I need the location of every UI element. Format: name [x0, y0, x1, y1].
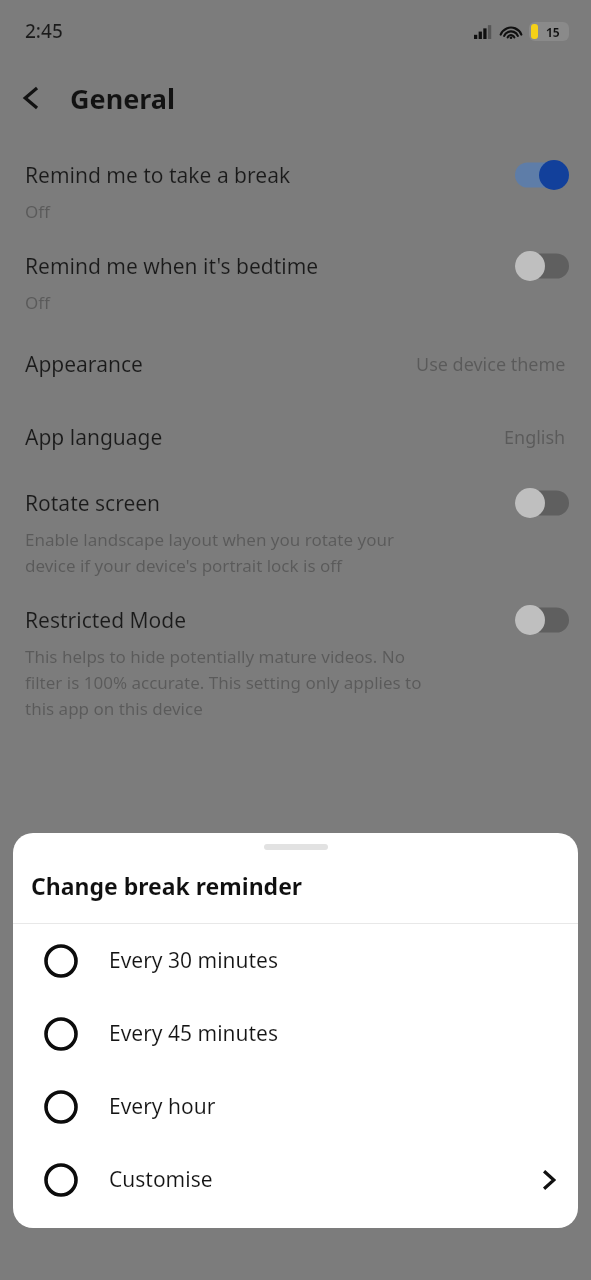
- staticText: 2:45: [25, 18, 63, 44]
- staticText: App language: [25, 423, 504, 452]
- button[interactable]: Rotate screen: [0, 474, 591, 591]
- staticText: Every 45 minutes: [109, 1019, 554, 1048]
- staticText: Every hour: [109, 1092, 554, 1121]
- button[interactable]: App language: [0, 401, 591, 474]
- button[interactable]: Customise: [13, 1143, 578, 1216]
- staticText: General: [70, 80, 176, 117]
- staticText: Remind me when it's bedtime: [25, 252, 515, 281]
- staticText: This helps to hide potentially mature vi…: [25, 645, 422, 720]
- staticText: Remind me to take a break: [25, 161, 515, 190]
- staticText: Customise: [109, 1165, 520, 1194]
- button[interactable]: Back: [0, 62, 62, 134]
- button[interactable]: Every 30 minutes: [13, 924, 578, 997]
- other: Open customise: [520, 1169, 578, 1191]
- staticText: Rotate screen: [25, 489, 515, 518]
- button[interactable]: Every 45 minutes: [13, 997, 578, 1070]
- button[interactable]: Remind me to take a break: [0, 146, 591, 237]
- staticText: Appearance: [25, 350, 416, 379]
- staticText: Change break reminder: [31, 870, 303, 901]
- staticText: Off: [25, 291, 50, 314]
- button[interactable]: Appearance: [0, 328, 591, 401]
- staticText: Every 30 minutes: [109, 946, 554, 975]
- button[interactable]: Restricted Mode: [0, 591, 591, 734]
- button[interactable]: Every hour: [13, 1070, 578, 1143]
- staticText: Restricted Mode: [25, 606, 515, 635]
- button[interactable]: Remind me when it's bedtime: [0, 237, 591, 328]
- staticText: Enable landscape layout when you rotate …: [25, 528, 395, 577]
- staticText: Use device theme: [416, 352, 566, 377]
- staticText: English: [504, 425, 566, 450]
- staticText: Off: [25, 200, 50, 223]
- staticText: 15: [546, 24, 560, 40]
